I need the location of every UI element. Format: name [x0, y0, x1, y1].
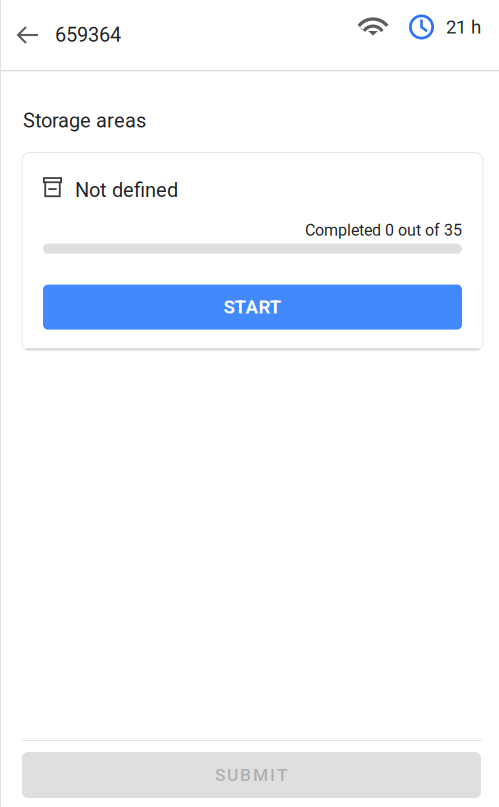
staticText: START: [223, 296, 281, 318]
button[interactable]: Back: [1, 0, 55, 70]
button[interactable]: START: [43, 285, 462, 330]
staticText: Not defined: [75, 178, 178, 202]
staticText: Completed 0 out of 35: [305, 221, 462, 240]
staticText: S U B M I T: [215, 765, 288, 785]
button[interactable]: S U B M I T: [22, 752, 481, 798]
staticText: 659364: [55, 23, 121, 47]
staticText: Storage areas: [23, 109, 146, 132]
staticText: 21 h: [446, 16, 481, 38]
